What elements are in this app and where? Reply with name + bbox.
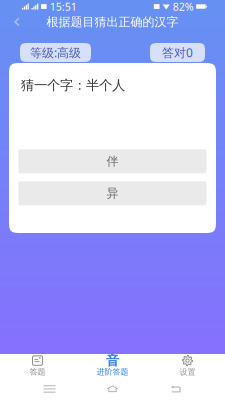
button[interactable]: Back [144, 378, 207, 400]
staticText: 进阶答题 [96, 367, 128, 377]
staticText: 等级:高级 [30, 44, 81, 60]
button[interactable]: Recent apps [18, 378, 81, 400]
staticText: 根据题目猜出正确的汉字 [46, 15, 178, 29]
staticText: 异 [106, 186, 118, 201]
staticText: 15:51 [50, 0, 77, 14]
button[interactable]: 伴 [18, 149, 206, 173]
staticText: 答对0 [162, 44, 193, 60]
button[interactable]: 异 [18, 181, 206, 205]
staticText: 答题 [29, 367, 45, 377]
button[interactable]: Home [81, 378, 144, 400]
button[interactable]: 设置 [150, 354, 225, 378]
staticText: 音 [106, 352, 119, 369]
button[interactable]: 答题 [0, 354, 75, 378]
staticText: 设置 [179, 367, 195, 377]
staticText: 82% [173, 0, 194, 14]
button[interactable]: 音 [75, 354, 150, 378]
staticText: 伴 [106, 154, 118, 169]
button[interactable]: Back [0, 13, 34, 31]
staticText: 猜一个字：半个人 [21, 77, 125, 93]
